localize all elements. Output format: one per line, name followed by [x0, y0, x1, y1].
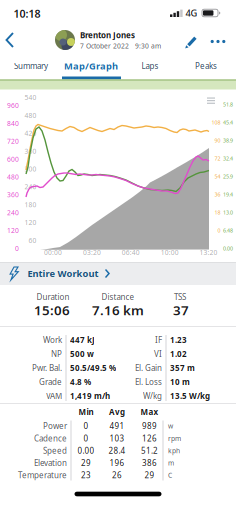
- staticText: 4G: [185, 7, 197, 19]
- staticText: 720: [7, 137, 19, 146]
- staticText: 51.2: [141, 445, 158, 456]
- staticText: 10:18: [13, 6, 40, 21]
- button[interactable]: Peaks: [184, 56, 228, 76]
- staticText: 15:06: [34, 301, 70, 319]
- staticText: w: [168, 422, 173, 430]
- staticText: 360: [7, 190, 19, 199]
- staticText: VI: [154, 349, 162, 359]
- button[interactable]: Back: [0, 26, 20, 54]
- staticText: Cadence: [34, 433, 67, 444]
- staticText: C: [168, 471, 172, 480]
- staticText: Speed: [43, 445, 67, 456]
- staticText: 18: [214, 209, 220, 216]
- staticText: 0: [217, 227, 220, 234]
- button[interactable]: Chart options: [206, 96, 216, 106]
- staticText: 480: [7, 172, 19, 181]
- staticText: 480: [24, 111, 36, 120]
- staticText: 500 w: [70, 349, 94, 359]
- staticText: 7.16 km: [92, 301, 144, 319]
- staticText: 54: [214, 173, 220, 180]
- staticText: 50.5/49.5 %: [70, 363, 116, 373]
- staticText: VAM: [46, 391, 62, 401]
- staticText: W/kg: [143, 391, 162, 401]
- staticText: 36: [214, 191, 220, 198]
- staticText: IF: [155, 335, 162, 345]
- staticText: 960: [7, 101, 19, 110]
- staticText: 25.9: [223, 173, 233, 180]
- staticText: Work: [43, 335, 62, 345]
- staticText: 1.02: [170, 349, 187, 359]
- staticText: 1,419 m/h: [70, 391, 110, 401]
- staticText: 72: [214, 155, 220, 162]
- staticText: 360: [24, 147, 36, 155]
- staticText: 196: [109, 458, 124, 468]
- staticText: El. Gain: [135, 363, 162, 373]
- staticText: 19.4: [223, 191, 233, 198]
- button[interactable]: Edit: [181, 32, 199, 50]
- staticText: rpm: [168, 434, 181, 443]
- staticText: El. Loss: [135, 377, 162, 387]
- staticText: 10 m: [170, 377, 190, 387]
- staticText: kph: [168, 446, 180, 455]
- staticText: 103: [109, 433, 124, 444]
- staticText: 0: [83, 421, 88, 431]
- staticText: 28.4: [108, 445, 125, 456]
- staticText: Grade: [39, 377, 62, 387]
- staticText: 13:20: [200, 248, 218, 257]
- staticText: 00:00: [44, 248, 62, 257]
- staticText: 240: [7, 208, 19, 217]
- staticText: 90: [214, 137, 220, 144]
- staticText: 180: [24, 200, 36, 209]
- staticText: Duration: [36, 292, 69, 302]
- staticText: 29: [81, 458, 91, 468]
- staticText: 13.5 W/kg: [170, 391, 210, 401]
- staticText: Brenton Jones: [80, 30, 135, 40]
- button[interactable]: Brenton Jones: [55, 30, 161, 50]
- button[interactable]: Summary: [0, 56, 62, 76]
- button[interactable]: Laps: [128, 56, 172, 76]
- staticText: 45.4: [223, 119, 233, 126]
- staticText: 108: [211, 119, 220, 126]
- staticText: 840: [7, 119, 19, 128]
- staticText: 357 m: [170, 363, 195, 373]
- staticText: 540: [24, 93, 36, 102]
- staticText: 600: [7, 155, 19, 163]
- staticText: 420: [24, 129, 36, 138]
- staticText: Max: [140, 407, 158, 417]
- staticText: 6.48: [223, 227, 233, 234]
- staticText: Summary: [14, 61, 48, 71]
- staticText: 120: [7, 226, 19, 235]
- staticText: 0: [15, 244, 19, 253]
- staticText: Pwr. Bal.: [32, 363, 62, 373]
- staticText: 7 October 2022 9:30 am: [80, 41, 161, 50]
- staticText: 4.8 %: [70, 377, 91, 387]
- staticText: Elevation: [34, 458, 67, 468]
- staticText: TSS: [174, 292, 186, 302]
- button[interactable]: Entire Workout: [0, 262, 236, 285]
- staticText: 0.00: [223, 245, 233, 252]
- staticText: 0: [83, 433, 88, 444]
- staticText: 03:20: [83, 248, 101, 257]
- staticText: 60: [28, 236, 36, 245]
- staticText: 29: [144, 470, 154, 480]
- staticText: 26: [112, 470, 122, 480]
- staticText: 06:40: [122, 248, 140, 257]
- staticText: 13.0: [223, 209, 233, 216]
- button[interactable]: Map/Graph: [59, 56, 123, 76]
- staticText: 23: [81, 470, 91, 480]
- staticText: 51.8: [223, 101, 233, 108]
- staticText: 38.9: [223, 137, 233, 144]
- staticText: Peaks: [195, 61, 217, 71]
- staticText: Map/Graph: [64, 60, 118, 72]
- staticText: 989: [142, 421, 157, 431]
- staticText: 1.23: [170, 335, 187, 345]
- staticText: 126: [142, 433, 157, 444]
- staticText: 37: [173, 301, 189, 319]
- staticText: 32.4: [223, 155, 233, 162]
- staticText: 300: [24, 164, 36, 173]
- staticText: 447 kJ: [70, 335, 95, 345]
- staticText: Power: [43, 421, 67, 431]
- staticText: Entire Workout: [27, 267, 98, 280]
- button[interactable]: More: [211, 40, 225, 43]
- staticText: m: [168, 458, 174, 467]
